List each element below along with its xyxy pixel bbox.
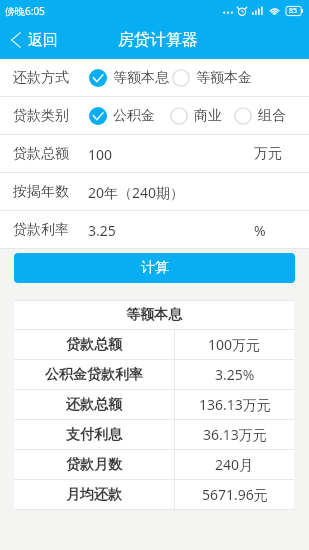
staticText: 贷款总额 [13, 145, 69, 163]
staticText: 3.25 [88, 221, 116, 240]
staticText: 贷款总额 [66, 336, 122, 354]
staticText: 贷款月数 [66, 456, 122, 474]
staticText: 支付利息 [66, 426, 122, 444]
staticText: 贷款类别 [13, 107, 69, 125]
staticText: 公积金 [113, 107, 155, 125]
button[interactable]: 商业 [170, 107, 222, 125]
staticText: 等额本息 [113, 69, 169, 87]
staticText: 计算 [141, 259, 169, 277]
staticText: 85 [289, 6, 298, 16]
button[interactable]: 返回 [0, 21, 68, 59]
staticText: 傍晚6:05 [5, 4, 45, 18]
staticText: 240月 [215, 455, 254, 474]
staticText: % [254, 221, 266, 240]
staticText: 还款方式 [13, 69, 69, 87]
button[interactable]: 等额本息 [89, 69, 169, 87]
staticText: 月均还款 [66, 486, 122, 504]
staticText: 还款总额 [66, 396, 122, 414]
staticText: 贷款利率 [13, 221, 69, 239]
staticText: 100万元 [208, 335, 261, 354]
staticText: 100 [88, 145, 113, 164]
button[interactable]: 公积金 [89, 107, 155, 125]
staticText: 返回 [28, 31, 58, 50]
staticText: 公积金贷款利率 [45, 366, 143, 384]
staticText: 商业 [194, 107, 222, 125]
button[interactable]: 组合 [234, 107, 286, 125]
staticText: 20年（240期） [88, 183, 185, 202]
staticText: 3.25% [215, 365, 255, 384]
button[interactable]: 等额本金 [172, 69, 252, 87]
staticText: 5671.96元 [202, 485, 268, 504]
button[interactable]: 贷款利率 [0, 211, 309, 249]
staticText: 136.13万元 [199, 395, 271, 414]
button[interactable]: 计算 [14, 253, 295, 283]
staticText: 按揭年数 [13, 183, 69, 201]
staticText: 36.13万元 [203, 425, 267, 444]
button[interactable]: 按揭年数 [0, 173, 309, 211]
staticText: 万元 [254, 145, 282, 163]
staticText: 组合 [258, 107, 286, 125]
staticText: 等额本息 [126, 306, 182, 324]
button[interactable]: 贷款总额 [0, 135, 309, 173]
staticText: 房贷计算器 [118, 30, 198, 50]
staticText: 等额本金 [196, 69, 252, 87]
